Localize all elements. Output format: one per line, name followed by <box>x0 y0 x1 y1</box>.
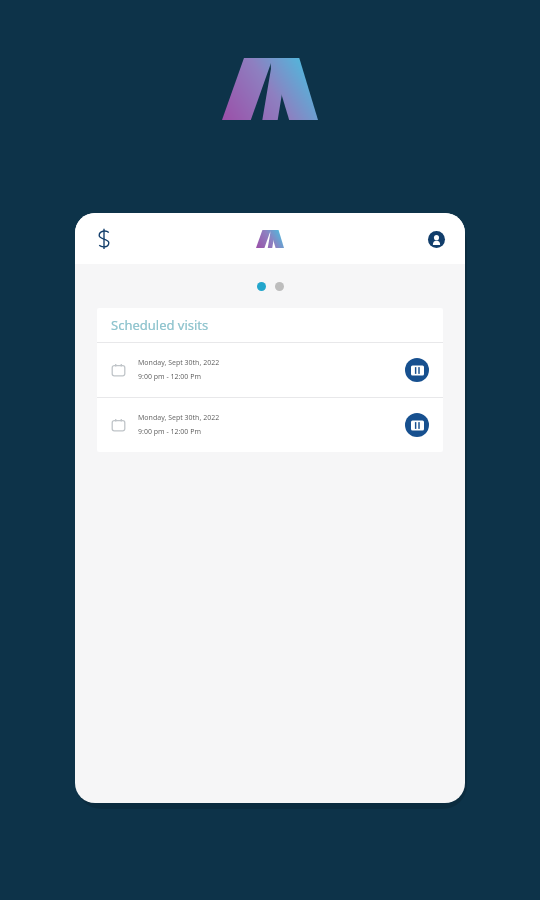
button[interactable]: Page 1 <box>257 282 266 291</box>
staticText: Scheduled visits <box>111 316 209 334</box>
staticText: 9:00 pm - 12:00 Pm <box>138 372 201 382</box>
button[interactable]: Payments <box>93 228 115 250</box>
button[interactable]: Open visit details <box>405 413 429 437</box>
staticText: Monday, Sept 30th, 2022 <box>138 413 220 423</box>
staticText: 9:00 pm - 12:00 Pm <box>138 427 201 437</box>
button[interactable]: Monday, Sept 30th, 2022 <box>97 343 443 397</box>
button[interactable]: Page 2 <box>275 282 284 291</box>
staticText: Monday, Sept 30th, 2022 <box>138 358 220 368</box>
button[interactable]: Open visit details <box>405 358 429 382</box>
button[interactable]: Account <box>425 228 447 250</box>
button[interactable]: Monday, Sept 30th, 2022 <box>97 398 443 452</box>
